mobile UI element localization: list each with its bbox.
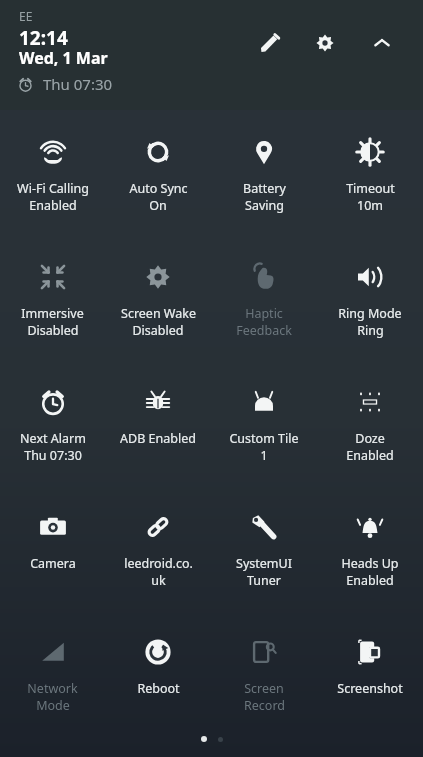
staticText: Tuner: [247, 572, 281, 589]
staticText: Battery: [243, 180, 286, 197]
button[interactable]: Custom Tile: [211, 369, 317, 494]
staticText: Next Alarm: [20, 430, 86, 447]
button[interactable]: Heads Up: [317, 494, 423, 619]
staticText: Ring Mode: [338, 305, 402, 322]
staticText: EE: [19, 8, 33, 24]
button[interactable]: Doze: [317, 369, 423, 494]
staticText: Haptic: [245, 305, 283, 322]
staticText: Feedback: [236, 322, 292, 339]
staticText: SystemUI: [236, 555, 292, 572]
button[interactable]: Immersive: [0, 244, 105, 369]
staticText: Doze: [355, 430, 385, 447]
button[interactable]: leedroid.co.: [105, 494, 211, 619]
staticText: Mode: [36, 697, 70, 714]
button[interactable]: Haptic: [211, 244, 317, 369]
staticText: Enabled: [346, 447, 394, 464]
staticText: 12:14: [19, 25, 68, 51]
staticText: Record: [244, 697, 285, 714]
staticText: Immersive: [21, 305, 84, 322]
button[interactable]: Battery: [211, 119, 317, 244]
button[interactable]: Settings: [303, 21, 347, 65]
staticText: Thu 07:30: [43, 74, 113, 94]
staticText: Reboot: [137, 680, 180, 697]
staticText: Heads Up: [341, 555, 399, 572]
staticText: Ring: [357, 322, 384, 339]
button[interactable]: Next Alarm: [0, 369, 105, 494]
staticText: On: [149, 197, 167, 214]
button[interactable]: Auto Sync: [105, 119, 211, 244]
staticText: Screen: [244, 680, 284, 697]
staticText: leedroid.co.: [124, 555, 193, 572]
button[interactable]: Timeout: [317, 119, 423, 244]
staticText: ADB Enabled: [120, 430, 196, 447]
staticText: Auto Sync: [129, 180, 188, 197]
button[interactable]: Ring Mode: [317, 244, 423, 369]
button[interactable]: Network: [0, 619, 105, 744]
button[interactable]: SystemUI: [211, 494, 317, 619]
staticText: 1: [260, 447, 268, 464]
staticText: Saving: [245, 197, 284, 214]
staticText: Wed, 1 Mar: [19, 47, 108, 69]
button[interactable]: Edit tiles: [248, 21, 292, 65]
staticText: Disabled: [27, 322, 79, 339]
staticText: Camera: [30, 555, 76, 572]
staticText: Enabled: [346, 572, 394, 589]
button[interactable]: Screen: [211, 619, 317, 744]
staticText: Screenshot: [337, 680, 403, 697]
staticText: Network: [27, 680, 78, 697]
button[interactable]: Screen Wake: [105, 244, 211, 369]
button[interactable]: Camera: [0, 494, 105, 619]
staticText: uk: [151, 572, 166, 589]
staticText: Screen Wake: [121, 305, 196, 322]
button[interactable]: Collapse: [360, 21, 404, 65]
button[interactable]: Screenshot: [317, 619, 423, 744]
button[interactable]: Wi-Fi Calling: [0, 119, 105, 244]
staticText: 10m: [357, 197, 383, 214]
button[interactable]: ADB Enabled: [105, 369, 211, 494]
staticText: Enabled: [29, 197, 77, 214]
staticText: Timeout: [346, 180, 395, 197]
staticText: Wi-Fi Calling: [17, 180, 89, 197]
staticText: Custom Tile: [229, 430, 299, 447]
staticText: Thu 07:30: [24, 447, 82, 464]
staticText: Disabled: [132, 322, 184, 339]
button[interactable]: Reboot: [105, 619, 211, 744]
